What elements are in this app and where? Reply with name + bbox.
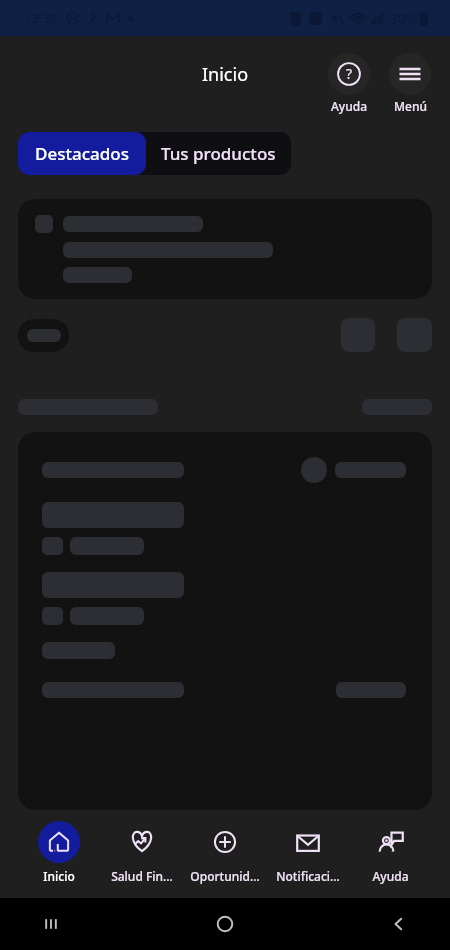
button[interactable] [18,319,69,352]
staticText: Inicio [202,62,249,87]
button[interactable]: Menú [389,53,431,114]
staticText: Tus productos [161,142,276,165]
other: Recents [40,913,62,935]
staticText: Menú [394,98,427,114]
staticText: Ayuda [372,868,409,884]
other: Home [214,913,236,935]
staticText: Salud Fin... [111,868,173,884]
button[interactable]: Destacados [18,132,146,175]
button[interactable]: Salud Fin... [100,810,183,884]
button[interactable]: Oportunid... [183,810,266,884]
staticText: Oportunid... [190,868,260,884]
staticText: Notificaci... [276,868,340,884]
button[interactable]: Ayuda [328,53,370,114]
other: Back [388,913,410,935]
staticText: Ayuda [331,98,368,114]
button[interactable]: Ayuda [349,810,432,884]
staticText: 12:39 [24,9,58,27]
button[interactable]: Inicio [18,810,100,884]
staticText: Inicio [43,868,75,884]
button[interactable]: Notificaci... [266,810,349,884]
button[interactable]: Tus productos [146,132,291,175]
staticText: Destacados [35,142,129,165]
staticText: ? [346,64,353,83]
staticText: 30% [390,9,418,28]
